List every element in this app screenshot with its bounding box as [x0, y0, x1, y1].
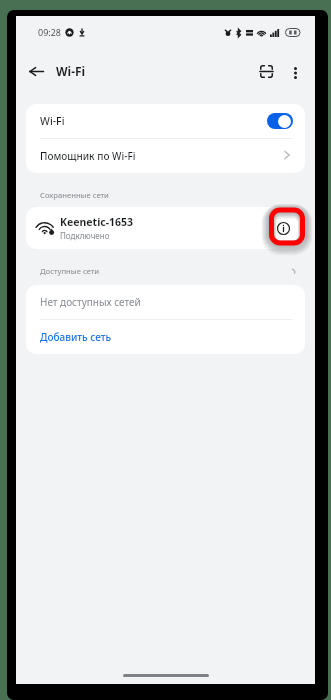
staticText: Нет доступных сетей: [40, 295, 141, 309]
staticText: Keenetic-1653: [60, 215, 134, 229]
button[interactable]: Scan QR code: [247, 55, 279, 87]
staticText: Доступные сети: [40, 266, 100, 276]
button[interactable]: Wi-Fi: [26, 104, 305, 138]
button[interactable]: Помощник по Wi-Fi: [26, 139, 305, 173]
staticText: Wi-Fi: [56, 63, 86, 79]
staticText: Подключено: [60, 230, 110, 241]
button[interactable]: Нет доступных сетей: [26, 285, 305, 319]
button[interactable]: More options: [279, 55, 311, 87]
button[interactable]: Network details: [269, 214, 297, 242]
staticText: Сохраненные сети: [40, 190, 109, 200]
button[interactable]: Back: [20, 55, 52, 87]
staticText: 09:28: [38, 26, 62, 38]
staticText: Помощник по Wi-Fi: [40, 149, 136, 163]
staticText: Wi-Fi: [40, 114, 65, 128]
staticText: Добавить сеть: [40, 330, 112, 344]
button[interactable]: Добавить сеть: [26, 320, 305, 354]
button[interactable]: Keenetic-1653: [26, 207, 305, 249]
